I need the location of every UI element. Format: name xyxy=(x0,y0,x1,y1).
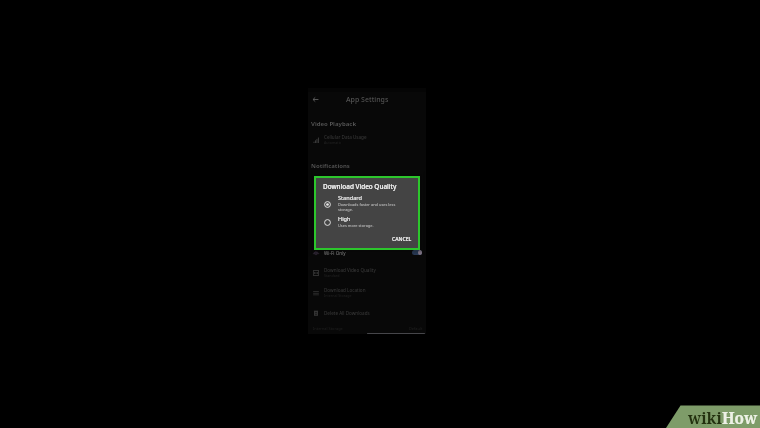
button[interactable]: Download Video Quality xyxy=(308,266,426,279)
staticText: wiki xyxy=(688,408,722,428)
staticText: Uses more storage. xyxy=(338,223,374,228)
staticText: Downloads faster and uses less storage. xyxy=(338,202,396,212)
button[interactable]: Standard xyxy=(324,201,331,208)
staticText: App Settings xyxy=(346,95,389,105)
staticText: Standard xyxy=(338,194,362,202)
button[interactable]: Download Location xyxy=(308,286,426,299)
staticText: Automatic xyxy=(324,140,342,145)
button[interactable]: Back xyxy=(312,96,319,103)
staticText: Download Video Quality xyxy=(323,182,397,191)
staticText: Download Video Quality xyxy=(324,267,376,273)
staticText: Cellular Data Usage xyxy=(324,134,367,140)
staticText: High xyxy=(338,215,351,223)
button[interactable]: High xyxy=(324,219,331,226)
staticText: Default xyxy=(409,326,423,331)
staticText: Wi-Fi Only xyxy=(324,250,346,256)
staticText: Internal Storage xyxy=(313,326,343,331)
staticText: Standard xyxy=(324,273,340,278)
button[interactable]: CANCEL xyxy=(390,234,414,245)
staticText: Delete All Downloads xyxy=(324,310,370,316)
staticText: Notifications xyxy=(311,162,350,170)
staticText: Download Location xyxy=(324,287,366,293)
staticText: Video Playback xyxy=(311,120,357,128)
staticText: Internal Storage xyxy=(324,293,352,298)
button[interactable]: High xyxy=(338,215,374,228)
staticText: How xyxy=(722,408,758,428)
button[interactable]: Wi-Fi Only xyxy=(308,246,426,259)
button[interactable]: Cellular Data Usage xyxy=(308,133,426,146)
button[interactable]: Delete All Downloads xyxy=(308,306,426,319)
button[interactable]: Standard xyxy=(338,194,396,212)
staticText: CANCEL xyxy=(392,236,412,243)
